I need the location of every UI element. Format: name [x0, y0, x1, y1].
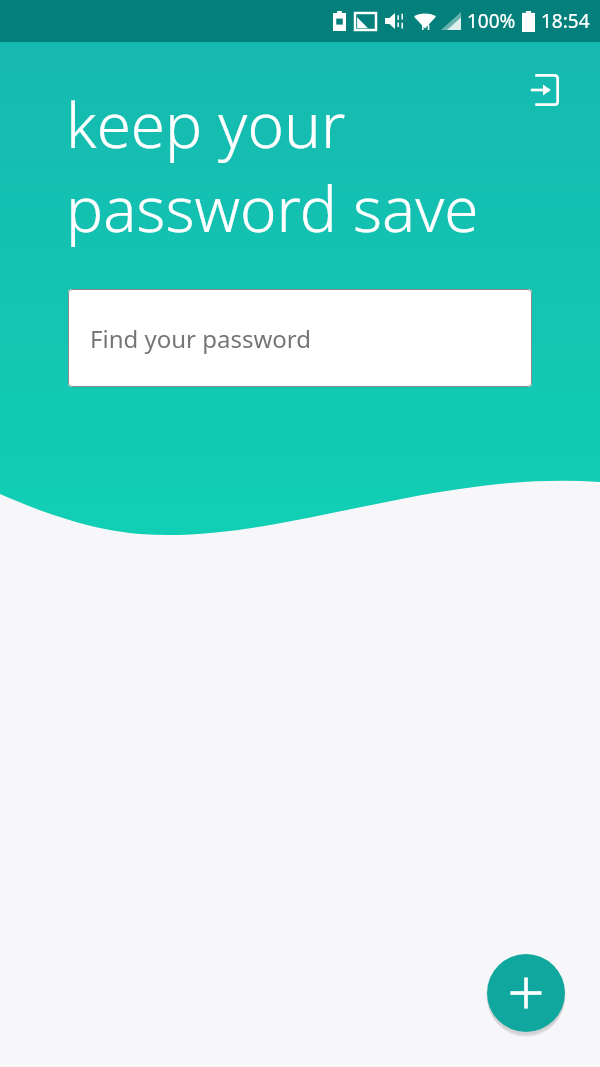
- staticText: Find your password: [90, 322, 312, 355]
- staticText: 18:54: [541, 8, 590, 34]
- staticText: keep your: [66, 82, 346, 166]
- staticText: password save: [66, 166, 479, 250]
- button[interactable]: Add password: [487, 954, 565, 1032]
- button[interactable]: Find your password: [68, 289, 532, 387]
- button[interactable]: Log in: [518, 65, 568, 115]
- staticText: 100%: [467, 8, 516, 34]
